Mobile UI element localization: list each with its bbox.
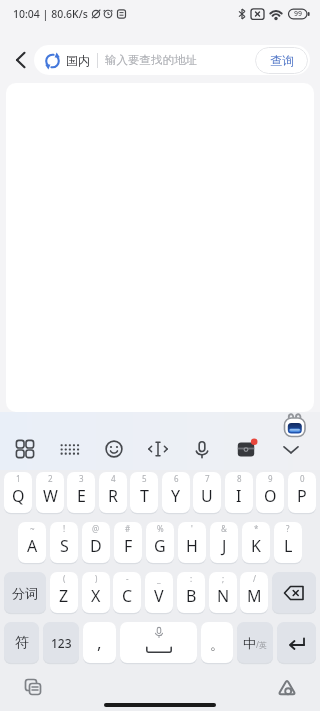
button[interactable]: - [113, 572, 141, 613]
staticText: 。 [210, 636, 224, 654]
button[interactable] [4, 40, 38, 80]
button[interactable]: % [146, 522, 174, 563]
staticText: 2 [48, 473, 53, 484]
staticText: 1 [16, 473, 21, 484]
button[interactable]: 。 [201, 622, 233, 663]
staticText: O [264, 485, 277, 507]
staticText: 符 [15, 634, 29, 652]
button[interactable] [10, 434, 40, 464]
button[interactable] [187, 434, 217, 464]
button[interactable]: ? [274, 522, 302, 563]
button[interactable] [276, 434, 306, 464]
staticText: 查询 [270, 53, 294, 68]
staticText: Y [171, 485, 181, 507]
button[interactable]: 123 [43, 622, 79, 663]
button[interactable] [283, 412, 307, 438]
staticText: 10:04 | 80.6K/s [13, 7, 88, 21]
staticText: * [254, 523, 259, 534]
staticText: Q [12, 485, 25, 507]
staticText: - [126, 573, 129, 584]
button[interactable]: , [83, 622, 116, 663]
staticText: E [77, 485, 86, 507]
staticText: T [140, 485, 149, 507]
button[interactable] [54, 434, 84, 464]
staticText: _ [157, 573, 161, 584]
staticText: , [97, 631, 102, 654]
button[interactable] [277, 622, 316, 663]
button[interactable]: 8 [225, 472, 253, 513]
staticText: 国内 [66, 53, 90, 68]
staticText: 8 [237, 473, 242, 484]
button[interactable]: # [114, 522, 142, 563]
button[interactable]: * [242, 522, 270, 563]
staticText: 输入要查找的地址 [105, 53, 197, 67]
staticText: J [222, 535, 227, 557]
staticText: C [122, 585, 133, 607]
button[interactable]: 国内 [34, 45, 310, 75]
button[interactable] [11, 670, 55, 706]
button[interactable]: 9 [256, 472, 284, 513]
staticText: I [236, 485, 242, 507]
button[interactable]: 中/英 [237, 622, 273, 663]
staticText: G [154, 535, 166, 557]
staticText: 3 [79, 473, 84, 484]
staticText: X [91, 585, 101, 607]
button[interactable] [265, 670, 309, 706]
staticText: U [201, 485, 213, 507]
staticText: 123 [51, 635, 72, 651]
button[interactable]: : [177, 572, 205, 613]
staticText: % [157, 523, 164, 534]
button[interactable]: / [240, 572, 268, 613]
staticText: ; [222, 573, 225, 584]
staticText: ! [63, 523, 66, 534]
button[interactable]: ~ [18, 522, 46, 563]
staticText: ' [191, 523, 193, 534]
button[interactable] [143, 434, 173, 464]
button[interactable]: 6 [162, 472, 190, 513]
staticText: W [43, 485, 58, 507]
button[interactable] [232, 434, 262, 464]
button[interactable]: 7 [193, 472, 221, 513]
button[interactable]: 1 [4, 472, 32, 513]
button[interactable]: ' [178, 522, 206, 563]
button[interactable]: 2 [36, 472, 64, 513]
staticText: R [108, 485, 118, 507]
button[interactable]: 符 [4, 622, 39, 663]
staticText: 99 [294, 9, 303, 19]
staticText: / [253, 573, 256, 584]
button[interactable]: _ [145, 572, 173, 613]
button[interactable]: 5 [130, 472, 158, 513]
button[interactable] [99, 434, 129, 464]
staticText: 6 [174, 473, 179, 484]
staticText: 分词 [12, 585, 38, 601]
button[interactable]: ! [50, 522, 78, 563]
button[interactable]: ; [209, 572, 237, 613]
button[interactable]: ( [50, 572, 78, 613]
staticText: Z [59, 585, 69, 607]
staticText: V [154, 585, 164, 607]
staticText: 0 [300, 473, 305, 484]
staticText: : [190, 573, 193, 584]
staticText: & [221, 523, 227, 534]
button[interactable]: 3 [67, 472, 95, 513]
staticText: 中/英 [243, 635, 267, 651]
button[interactable] [120, 622, 197, 663]
staticText: # [125, 523, 131, 534]
button[interactable]: ) [82, 572, 110, 613]
staticText: B [186, 585, 197, 607]
staticText: P [297, 485, 307, 507]
staticText: D [90, 535, 102, 557]
button[interactable] [272, 572, 316, 613]
button[interactable]: & [210, 522, 238, 563]
staticText: L [284, 535, 293, 557]
button[interactable]: 分词 [4, 572, 46, 613]
staticText: M [247, 585, 262, 607]
button[interactable]: 4 [99, 472, 127, 513]
staticText: 7 [205, 473, 210, 484]
staticText: 5 [142, 473, 147, 484]
button[interactable]: @ [82, 522, 110, 563]
button[interactable]: 查询 [255, 47, 308, 74]
staticText: 4 [111, 473, 116, 484]
staticText: ? [286, 523, 290, 534]
button[interactable]: 0 [288, 472, 316, 513]
